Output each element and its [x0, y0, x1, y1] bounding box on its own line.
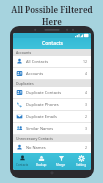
- button[interactable]: All Contacts: [13, 56, 91, 67]
- button[interactable]: Backup: [32, 153, 51, 170]
- staticText: 4: [85, 71, 88, 76]
- staticText: 3: [85, 126, 88, 131]
- staticText: 4: [85, 90, 88, 95]
- button[interactable]: No Names: [13, 142, 91, 153]
- staticText: Duplicates: [16, 81, 34, 86]
- staticText: Accounts: [26, 71, 85, 76]
- button[interactable]: Duplicate Phones: [13, 99, 91, 110]
- staticText: Backup: [36, 163, 47, 167]
- staticText: Unnecessary Contacts: [16, 136, 54, 141]
- button[interactable]: Merge: [51, 153, 71, 170]
- staticText: All Possible Filtered: [11, 4, 93, 15]
- button[interactable]: Contacts: [13, 153, 32, 170]
- staticText: 3: [85, 102, 88, 107]
- staticText: Here: [42, 16, 62, 27]
- button[interactable]: Accounts: [13, 68, 91, 79]
- staticText: Duplicate Contacts: [26, 90, 85, 95]
- button[interactable]: Duplicate Contacts: [13, 87, 91, 98]
- staticText: Merge: [56, 163, 66, 167]
- staticText: All Contacts: [26, 59, 83, 64]
- button[interactable]: Similar Names: [13, 123, 91, 134]
- staticText: 2: [85, 114, 88, 119]
- staticText: Setting: [76, 163, 86, 167]
- button[interactable]: Duplicate Emails: [13, 111, 91, 122]
- staticText: Accounts: [16, 50, 32, 55]
- staticText: Duplicate Emails: [26, 114, 85, 119]
- staticText: Contacts: [42, 40, 63, 47]
- staticText: Duplicate Phones: [26, 102, 85, 107]
- staticText: Similar Names: [26, 126, 85, 131]
- button[interactable]: Setting: [71, 153, 91, 170]
- staticText: 2: [85, 145, 88, 150]
- staticText: 12: [83, 59, 88, 64]
- staticText: No Names: [26, 145, 85, 150]
- staticText: Contacts: [16, 163, 29, 167]
